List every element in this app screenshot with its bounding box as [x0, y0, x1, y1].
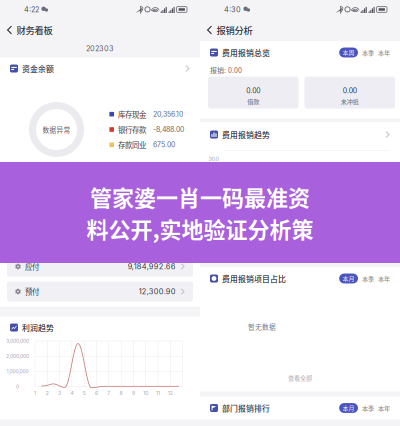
staticText: 本年: [378, 48, 390, 57]
button[interactable]: 查看全部: [200, 363, 400, 391]
staticText: 本月: [343, 404, 355, 412]
staticText: 2,000,000: [6, 353, 29, 359]
staticText: 预付: [25, 286, 39, 297]
button[interactable]: 费用报销总览: [200, 41, 400, 63]
staticText: 查看全部: [288, 373, 312, 382]
staticText: 0: [16, 383, 19, 390]
staticText: 银行存款: [118, 124, 146, 135]
button[interactable]: 本季: [362, 404, 374, 412]
button[interactable]: 本年: [378, 274, 390, 283]
staticText: 本年: [378, 404, 390, 412]
button[interactable]: 应付: [0, 256, 200, 281]
staticText: 未冲抵: [341, 97, 359, 106]
staticText: 1,000,000: [6, 368, 28, 374]
staticText: 7: [107, 390, 110, 396]
staticText: 4: [70, 390, 73, 396]
staticText: 本季: [362, 404, 374, 412]
button[interactable]: 财务看板: [0, 20, 200, 39]
staticText: 本季: [362, 274, 374, 283]
staticText: 9: [132, 390, 135, 396]
staticText: 10: [143, 390, 148, 396]
staticText: 9,184,992.66: [128, 262, 176, 271]
staticText: 本年: [378, 274, 390, 283]
staticText: 1: [34, 390, 36, 396]
staticText: 利润趋势: [22, 322, 54, 333]
staticText: 6: [95, 390, 98, 396]
staticText: 12: [168, 390, 173, 396]
staticText: 3: [58, 390, 61, 396]
button[interactable]: 部门报销排行: [200, 396, 400, 419]
button[interactable]: 本周: [339, 48, 358, 57]
staticText: 5: [83, 390, 86, 396]
button[interactable]: 应收: [0, 206, 200, 231]
button[interactable]: 本季: [362, 274, 374, 283]
staticText: 675.00: [153, 141, 175, 149]
staticText: 0: [215, 237, 218, 243]
staticText: 2: [46, 390, 49, 396]
staticText: 暂无数据: [248, 322, 276, 331]
staticText: 12,300.90: [139, 287, 176, 296]
staticText: 费用报销总览: [222, 47, 270, 58]
button[interactable]: 往来余额: [0, 184, 200, 206]
button[interactable]: 报销分析: [200, 20, 400, 39]
staticText: 费用报销趋势: [222, 129, 270, 140]
staticText: -8,488.00: [153, 125, 184, 134]
staticText: 0.00: [343, 86, 357, 95]
staticText: 20,356.10: [153, 110, 183, 118]
button[interactable]: 本月: [339, 403, 358, 413]
staticText: 数据异常: [42, 125, 70, 134]
staticText: 8: [120, 390, 123, 396]
staticText: 应付: [25, 261, 39, 272]
staticText: 费用报销项目占比: [222, 273, 286, 284]
staticText: 11: [156, 390, 160, 396]
staticText: 30.0: [208, 155, 218, 162]
staticText: 0.00: [246, 86, 260, 95]
button[interactable]: 费用报销项目占比: [200, 267, 400, 289]
staticText: 本周: [343, 48, 355, 57]
staticText: 资金余额: [22, 63, 54, 74]
button[interactable]: 资金余额: [0, 57, 200, 79]
staticText: 本季: [362, 48, 374, 57]
staticText: 借款: [247, 97, 259, 106]
button[interactable]: 本月: [339, 274, 358, 283]
staticText: 5: [284, 240, 287, 247]
staticText: 3: [257, 240, 260, 247]
staticText: 202303: [86, 44, 114, 53]
staticText: 存款同业: [118, 139, 146, 150]
staticText: 4:22: [24, 5, 39, 14]
button[interactable]: 费用报销趋势: [200, 122, 400, 146]
staticText: 本月: [343, 274, 355, 283]
button[interactable]: 本季: [362, 48, 374, 57]
staticText: 部门报销排行: [222, 402, 270, 414]
button[interactable]: 本年: [378, 404, 390, 412]
button[interactable]: 预收: [0, 231, 200, 256]
staticText: 财务看板: [16, 23, 52, 37]
staticText: 库存现金: [118, 109, 146, 120]
staticText: 报销分析: [216, 23, 252, 37]
button[interactable]: 预付: [0, 281, 200, 306]
staticText: 3,000,000: [6, 338, 29, 344]
staticText: -13,146.25: [140, 212, 176, 221]
staticText: 料公开,实地验证分析策: [86, 212, 313, 244]
staticText: 4:30: [224, 5, 241, 14]
staticText: 管家婆一肖一码最准资: [90, 181, 310, 212]
staticText: 报销: 0.00: [210, 65, 242, 75]
button[interactable]: 本年: [378, 48, 390, 57]
staticText: 4: [271, 240, 274, 247]
